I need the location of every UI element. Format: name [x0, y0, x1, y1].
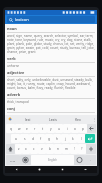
- button[interactable]: q: [6, 124, 15, 133]
- staticText: v: [41, 147, 43, 151]
- button[interactable]: Recent apps: [51, 166, 74, 173]
- staticText: ?123: [10, 159, 16, 162]
- button[interactable]: p: [79, 124, 87, 133]
- staticText: l: [81, 137, 82, 141]
- staticText: u: [58, 127, 60, 131]
- staticText: .: [90, 158, 91, 162]
- button[interactable]: Voice input: [5, 115, 15, 123]
- staticText: o: [74, 127, 76, 131]
- staticText: w: [18, 127, 21, 131]
- button[interactable]: !: [70, 144, 78, 154]
- staticText: lexicon: [15, 17, 29, 23]
- staticText: Lexis: [49, 117, 57, 122]
- staticText: b: [49, 147, 51, 151]
- button[interactable]: ?: [78, 144, 86, 154]
- button[interactable]: l: [77, 134, 85, 143]
- button[interactable]: Back: [5, 166, 28, 173]
- staticText: s: [24, 137, 26, 141]
- button[interactable]: Settings: [20, 155, 31, 165]
- staticText: z: [18, 147, 20, 151]
- staticText: conj: [7, 106, 15, 111]
- staticText: adverb: [7, 92, 21, 97]
- button[interactable]: Backspace: [87, 124, 96, 133]
- button[interactable]: k: [69, 134, 77, 143]
- staticText: verb: [7, 56, 16, 61]
- button[interactable]: lexicon: [7, 16, 95, 23]
- staticText: c: [33, 147, 35, 151]
- button[interactable]: lexi: [15, 115, 40, 123]
- button[interactable]: h: [53, 134, 61, 143]
- staticText: n: [57, 147, 59, 151]
- button[interactable]: z: [15, 144, 22, 154]
- staticText: k: [72, 137, 74, 141]
- staticText: f: [40, 137, 42, 141]
- staticText: q: [10, 127, 12, 131]
- button[interactable]: x: [22, 144, 30, 154]
- button[interactable]: Lexis: [40, 115, 65, 123]
- button[interactable]: e: [23, 124, 31, 133]
- staticText: English: [48, 158, 57, 162]
- button[interactable]: b: [46, 144, 54, 154]
- staticText: i: [67, 127, 68, 131]
- button[interactable]: j: [61, 134, 69, 143]
- staticText: flex: [75, 117, 81, 122]
- staticText: p: [82, 127, 84, 131]
- button[interactable]: ?123: [6, 155, 20, 165]
- staticText: adjective: [7, 70, 25, 75]
- staticText: noun: [7, 26, 17, 31]
- staticText: short, salty, only, unbelievable, dust, …: [7, 78, 95, 90]
- button[interactable]: v: [38, 144, 46, 154]
- staticText: d: [32, 137, 34, 141]
- staticText: unhorse: [7, 64, 20, 68]
- button[interactable]: m: [62, 144, 70, 154]
- button[interactable]: r: [31, 124, 39, 133]
- button[interactable]: d: [29, 134, 37, 143]
- button[interactable]: u: [55, 124, 63, 133]
- staticText: j: [65, 137, 66, 141]
- button[interactable]: c: [30, 144, 38, 154]
- staticText: thick, transpod: [7, 100, 29, 104]
- staticText: !: [74, 147, 75, 151]
- button[interactable]: n: [54, 144, 62, 154]
- staticText: h: [56, 137, 58, 141]
- button[interactable]: Emoji: [86, 144, 96, 154]
- staticText: m: [65, 147, 68, 151]
- staticText: g: [48, 137, 50, 141]
- button[interactable]: More suggestions: [90, 115, 97, 123]
- staticText: lexi: [25, 117, 31, 122]
- staticText: r: [34, 127, 36, 131]
- button[interactable]: i: [63, 124, 71, 133]
- staticText: a: [15, 137, 17, 141]
- button[interactable]: Enter: [85, 134, 95, 143]
- button[interactable]: t: [39, 124, 47, 133]
- button[interactable]: flex: [65, 115, 90, 123]
- button[interactable]: o: [71, 124, 79, 133]
- button[interactable]: Keyboard switcher: [74, 166, 97, 173]
- button[interactable]: English: [31, 155, 74, 165]
- button[interactable]: Sticker: [74, 155, 85, 165]
- staticText: ?: [81, 147, 83, 151]
- staticText: e: [26, 127, 28, 131]
- staticText: t: [42, 127, 44, 131]
- button[interactable]: s: [20, 134, 29, 143]
- staticText: ⋮: [92, 117, 96, 122]
- button[interactable]: Shift: [6, 144, 15, 154]
- button[interactable]: a: [11, 134, 20, 143]
- button[interactable]: y: [47, 124, 55, 133]
- staticText: y: [50, 127, 52, 131]
- button[interactable]: Home: [28, 166, 51, 173]
- button[interactable]: f: [37, 134, 45, 143]
- button[interactable]: g: [45, 134, 53, 143]
- button[interactable]: w: [15, 124, 23, 133]
- staticText: word, sign, name, query, search, selecto…: [7, 34, 95, 54]
- staticText: x: [25, 147, 27, 151]
